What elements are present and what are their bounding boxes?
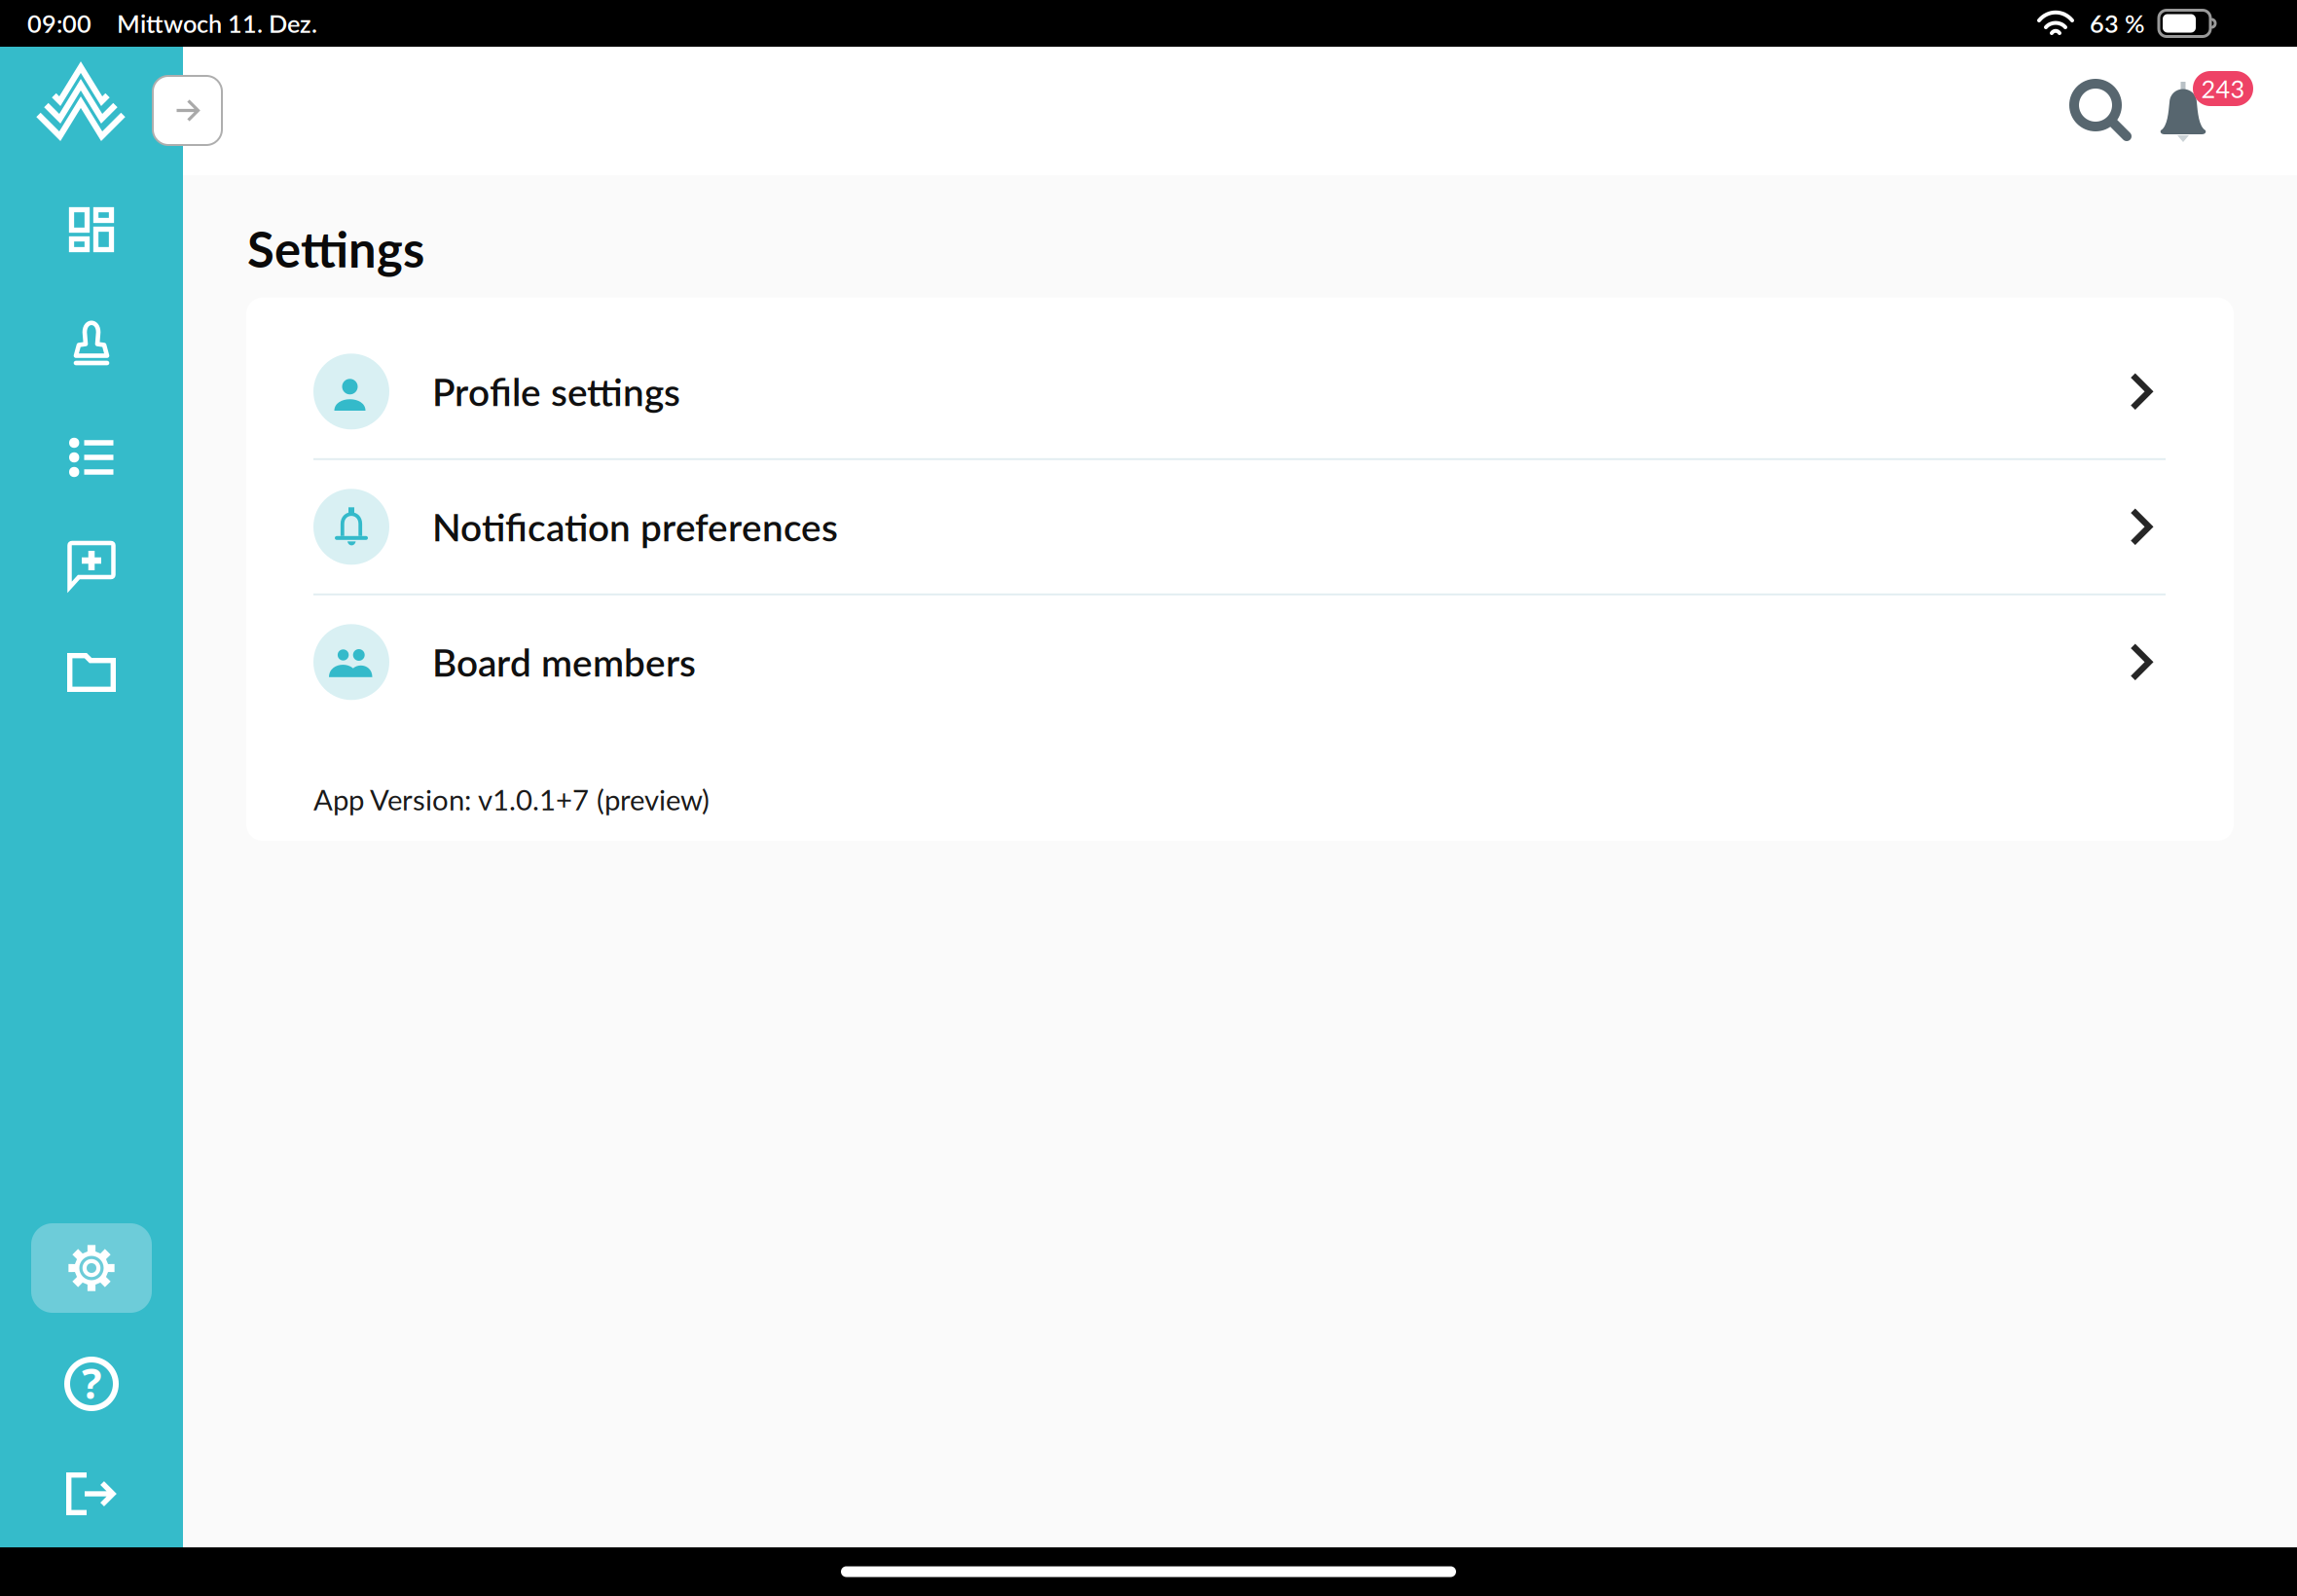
button[interactable]: Approvals: [0, 289, 183, 396]
button[interactable]: Messages: [0, 512, 183, 619]
button[interactable]: Settings: [31, 1223, 152, 1313]
staticText: Board members: [432, 639, 696, 685]
staticText: Notification preferences: [432, 504, 838, 549]
staticText: Settings: [247, 219, 424, 278]
button[interactable]: Search: [2057, 47, 2146, 175]
button[interactable]: Board members: [246, 595, 2234, 729]
button[interactable]: Help: [0, 1330, 183, 1437]
button[interactable]: Expand sidebar: [153, 76, 222, 145]
button[interactable]: Log out: [0, 1440, 183, 1547]
button[interactable]: Dashboard: [0, 176, 183, 283]
staticText: App Version: v1.0.1+7 (preview): [313, 782, 710, 816]
staticText: 243: [2201, 74, 2245, 103]
staticText: ?: [82, 1355, 101, 1411]
button[interactable]: Notification preferences: [246, 460, 2234, 593]
button[interactable]: Notifications: [2160, 47, 2253, 175]
staticText: Profile settings: [432, 369, 680, 414]
button[interactable]: Profile settings: [246, 325, 2234, 458]
staticText: Mittwoch 11. Dez.: [117, 9, 317, 38]
staticText: 09:00: [27, 9, 91, 38]
button[interactable]: Files: [0, 619, 183, 726]
staticText: 63 %: [2090, 9, 2145, 38]
button[interactable]: Tasks: [0, 404, 183, 511]
